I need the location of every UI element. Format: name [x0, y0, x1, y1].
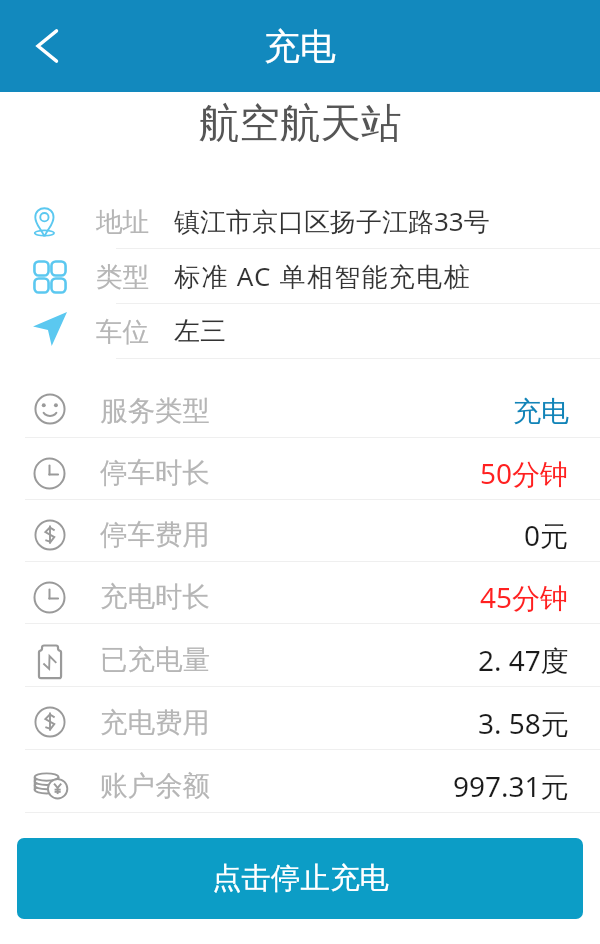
staticText: 充电: [513, 394, 569, 429]
staticText: 已充电量: [100, 643, 210, 678]
button[interactable]: 停车费用: [0, 500, 600, 561]
button[interactable]: 服务类型: [0, 376, 600, 437]
staticText: 点击停止充电: [212, 860, 389, 897]
staticText: 50分钟: [480, 454, 569, 492]
staticText: 2. 47度: [478, 641, 569, 679]
staticText: 45分钟: [480, 578, 569, 616]
button[interactable]: 点击停止充电: [17, 838, 583, 919]
staticText: 左三: [174, 315, 226, 348]
staticText: 3. 58元: [478, 704, 569, 742]
button[interactable]: 车位: [0, 304, 600, 358]
staticText: 充电时长: [100, 580, 210, 615]
staticText: 停车费用: [100, 518, 210, 553]
button[interactable]: 充电时长: [0, 562, 600, 623]
staticText: 航空航天站: [199, 98, 402, 149]
staticText: 镇江市京口区扬子江路33号: [174, 203, 490, 239]
staticText: 服务类型: [100, 394, 210, 429]
staticText: 地址: [96, 205, 149, 238]
staticText: 充电: [264, 24, 336, 69]
button[interactable]: 停车时长: [0, 438, 600, 499]
staticText: 账户余额: [100, 769, 210, 804]
staticText: 类型: [96, 260, 149, 293]
staticText: 标准 AC 单相智能充电桩: [174, 258, 471, 294]
staticText: 0元: [524, 516, 569, 554]
staticText: 充电费用: [100, 706, 210, 741]
button[interactable]: Back: [15, 14, 79, 78]
staticText: 停车时长: [100, 456, 210, 491]
button[interactable]: 账户余额: [0, 750, 600, 812]
button[interactable]: 地址: [0, 194, 600, 248]
button[interactable]: 已充电量: [0, 624, 600, 686]
button[interactable]: 充电费用: [0, 687, 600, 749]
staticText: 车位: [96, 315, 149, 348]
staticText: 997.31元: [453, 767, 569, 805]
button[interactable]: 类型: [0, 249, 600, 303]
